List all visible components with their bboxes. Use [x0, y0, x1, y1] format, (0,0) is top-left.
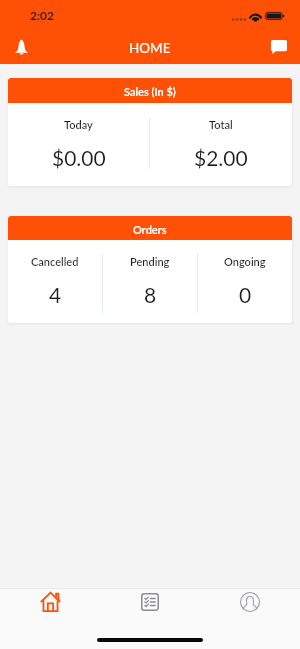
button[interactable]: Notifications [4, 30, 38, 64]
staticText: 2:02 [30, 8, 54, 22]
button[interactable]: Orders [100, 589, 200, 615]
staticText: 8 [144, 282, 157, 307]
staticText: 0 [239, 282, 252, 307]
button[interactable]: Home [0, 589, 100, 615]
staticText: Sales (In $) [124, 85, 176, 98]
staticText: $2.00 [194, 145, 248, 170]
staticText: Today [64, 118, 93, 131]
staticText: Ongoing [224, 255, 266, 268]
staticText: HOME [129, 40, 171, 56]
button[interactable]: Messages [262, 30, 296, 64]
staticText: Cancelled [31, 255, 79, 268]
staticText: $0.00 [52, 145, 106, 170]
staticText: 4 [49, 282, 62, 307]
staticText: Total [209, 118, 233, 131]
staticText: Pending [130, 255, 170, 268]
button[interactable]: Profile [200, 589, 300, 615]
staticText: Orders [133, 223, 167, 236]
